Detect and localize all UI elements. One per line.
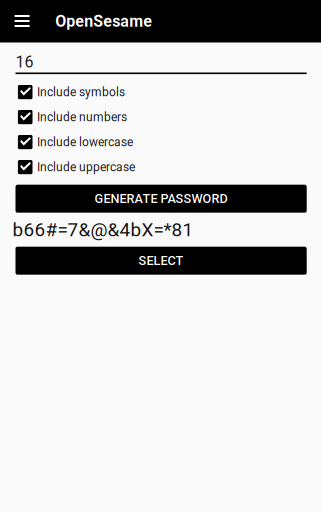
button[interactable]: Include lowercase bbox=[15, 130, 307, 155]
staticText: Include numbers bbox=[37, 110, 127, 124]
staticText: Include lowercase bbox=[37, 135, 133, 149]
button[interactable]: Include symbols bbox=[15, 80, 307, 105]
staticText: Include symbols bbox=[37, 85, 125, 99]
staticText: b66#=7&@&4bX=*81 bbox=[12, 219, 193, 241]
button[interactable]: Open navigation menu bbox=[0, 0, 30, 42]
staticText: SELECT bbox=[139, 253, 184, 268]
button[interactable]: Include uppercase bbox=[15, 155, 307, 180]
button[interactable]: SELECT bbox=[15, 247, 307, 275]
staticText: 16 bbox=[15, 53, 33, 71]
button[interactable]: GENERATE PASSWORD bbox=[15, 185, 307, 213]
staticText: GENERATE PASSWORD bbox=[95, 191, 228, 206]
staticText: OpenSesame bbox=[55, 12, 152, 31]
button[interactable]: Include numbers bbox=[15, 105, 307, 130]
staticText: Include uppercase bbox=[37, 160, 135, 174]
